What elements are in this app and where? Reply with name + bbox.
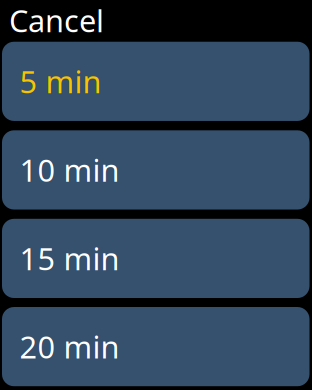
button[interactable]: 15 min (2, 219, 309, 298)
staticText: 10 min (19, 150, 119, 190)
button[interactable]: 5 min (2, 42, 309, 121)
staticText: Cancel (9, 0, 104, 41)
staticText: 20 min (19, 326, 119, 367)
button[interactable]: 10 min (2, 130, 309, 209)
staticText: 15 min (19, 238, 119, 279)
button[interactable]: 20 min (2, 307, 309, 386)
staticText: 5 min (19, 61, 101, 102)
button[interactable]: Cancel (0, 0, 312, 41)
